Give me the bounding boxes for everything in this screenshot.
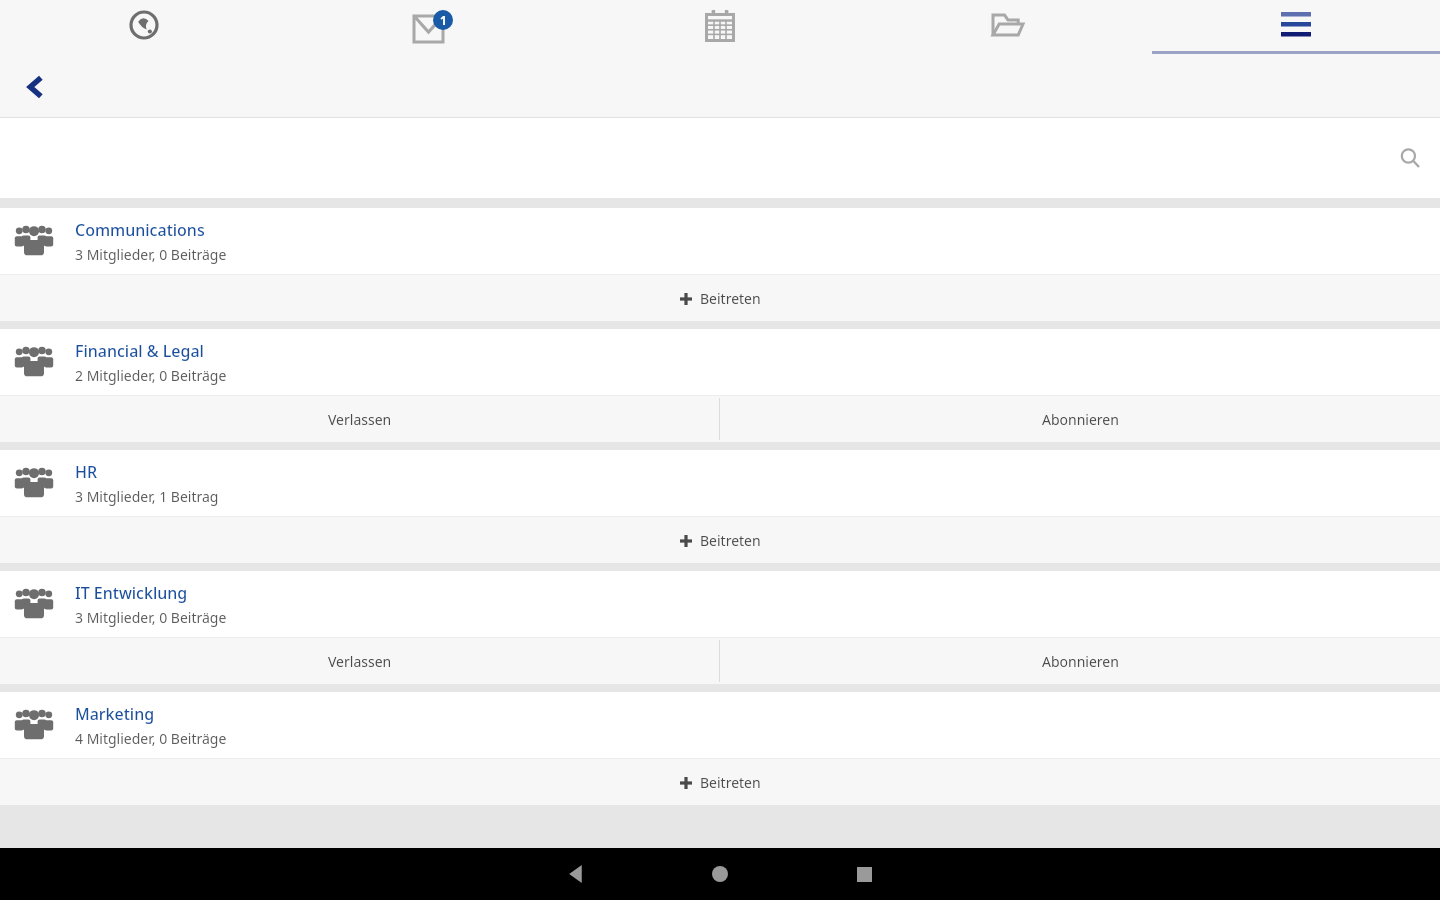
staticText: 3 Mitglieder, 1 Beitrag [75, 487, 219, 506]
button[interactable]: Marketing [0, 692, 1440, 758]
button[interactable]: Beitreten [0, 759, 1440, 805]
button[interactable]: Beitreten [0, 275, 1440, 321]
button[interactable]: IT Entwicklung [0, 571, 1440, 637]
staticText: Verlassen [328, 410, 392, 429]
staticText: IT Entwicklung [75, 582, 188, 604]
button[interactable]: Back [528, 848, 624, 900]
button[interactable]: Home [672, 848, 768, 900]
button[interactable]: Verlassen [0, 638, 719, 684]
staticText: Beitreten [700, 531, 761, 550]
button[interactable]: Beitreten [0, 517, 1440, 563]
button[interactable]: Abonnieren [720, 396, 1440, 442]
button[interactable]: Files [864, 0, 1152, 56]
staticText: Abonnieren [1042, 410, 1119, 429]
staticText: Communications [75, 219, 205, 241]
button[interactable]: Mail [288, 0, 576, 56]
button[interactable]: Abonnieren [720, 638, 1440, 684]
staticText: Abonnieren [1042, 652, 1119, 671]
staticText: Marketing [75, 703, 155, 725]
button[interactable]: Menu [1152, 0, 1440, 56]
button[interactable]: Communications [0, 208, 1440, 274]
button[interactable]: Calendar [576, 0, 864, 56]
button[interactable]: Financial & Legal [0, 329, 1440, 395]
staticText: 2 Mitglieder, 0 Beiträge [75, 366, 227, 385]
staticText: HR [75, 461, 98, 483]
button[interactable]: Back [10, 61, 62, 113]
staticText: Beitreten [700, 289, 761, 308]
staticText: Beitreten [700, 773, 761, 792]
button[interactable]: Verlassen [0, 396, 719, 442]
button[interactable]: Search [1386, 134, 1434, 182]
staticText: Verlassen [328, 652, 392, 671]
button[interactable]: Global [0, 0, 288, 56]
staticText: 4 Mitglieder, 0 Beiträge [75, 729, 227, 748]
button[interactable]: Recents [816, 848, 912, 900]
staticText: Financial & Legal [75, 340, 204, 362]
staticText: 1 [440, 12, 447, 28]
staticText: 3 Mitglieder, 0 Beiträge [75, 245, 227, 264]
button[interactable]: HR [0, 450, 1440, 516]
staticText: 3 Mitglieder, 0 Beiträge [75, 608, 227, 627]
